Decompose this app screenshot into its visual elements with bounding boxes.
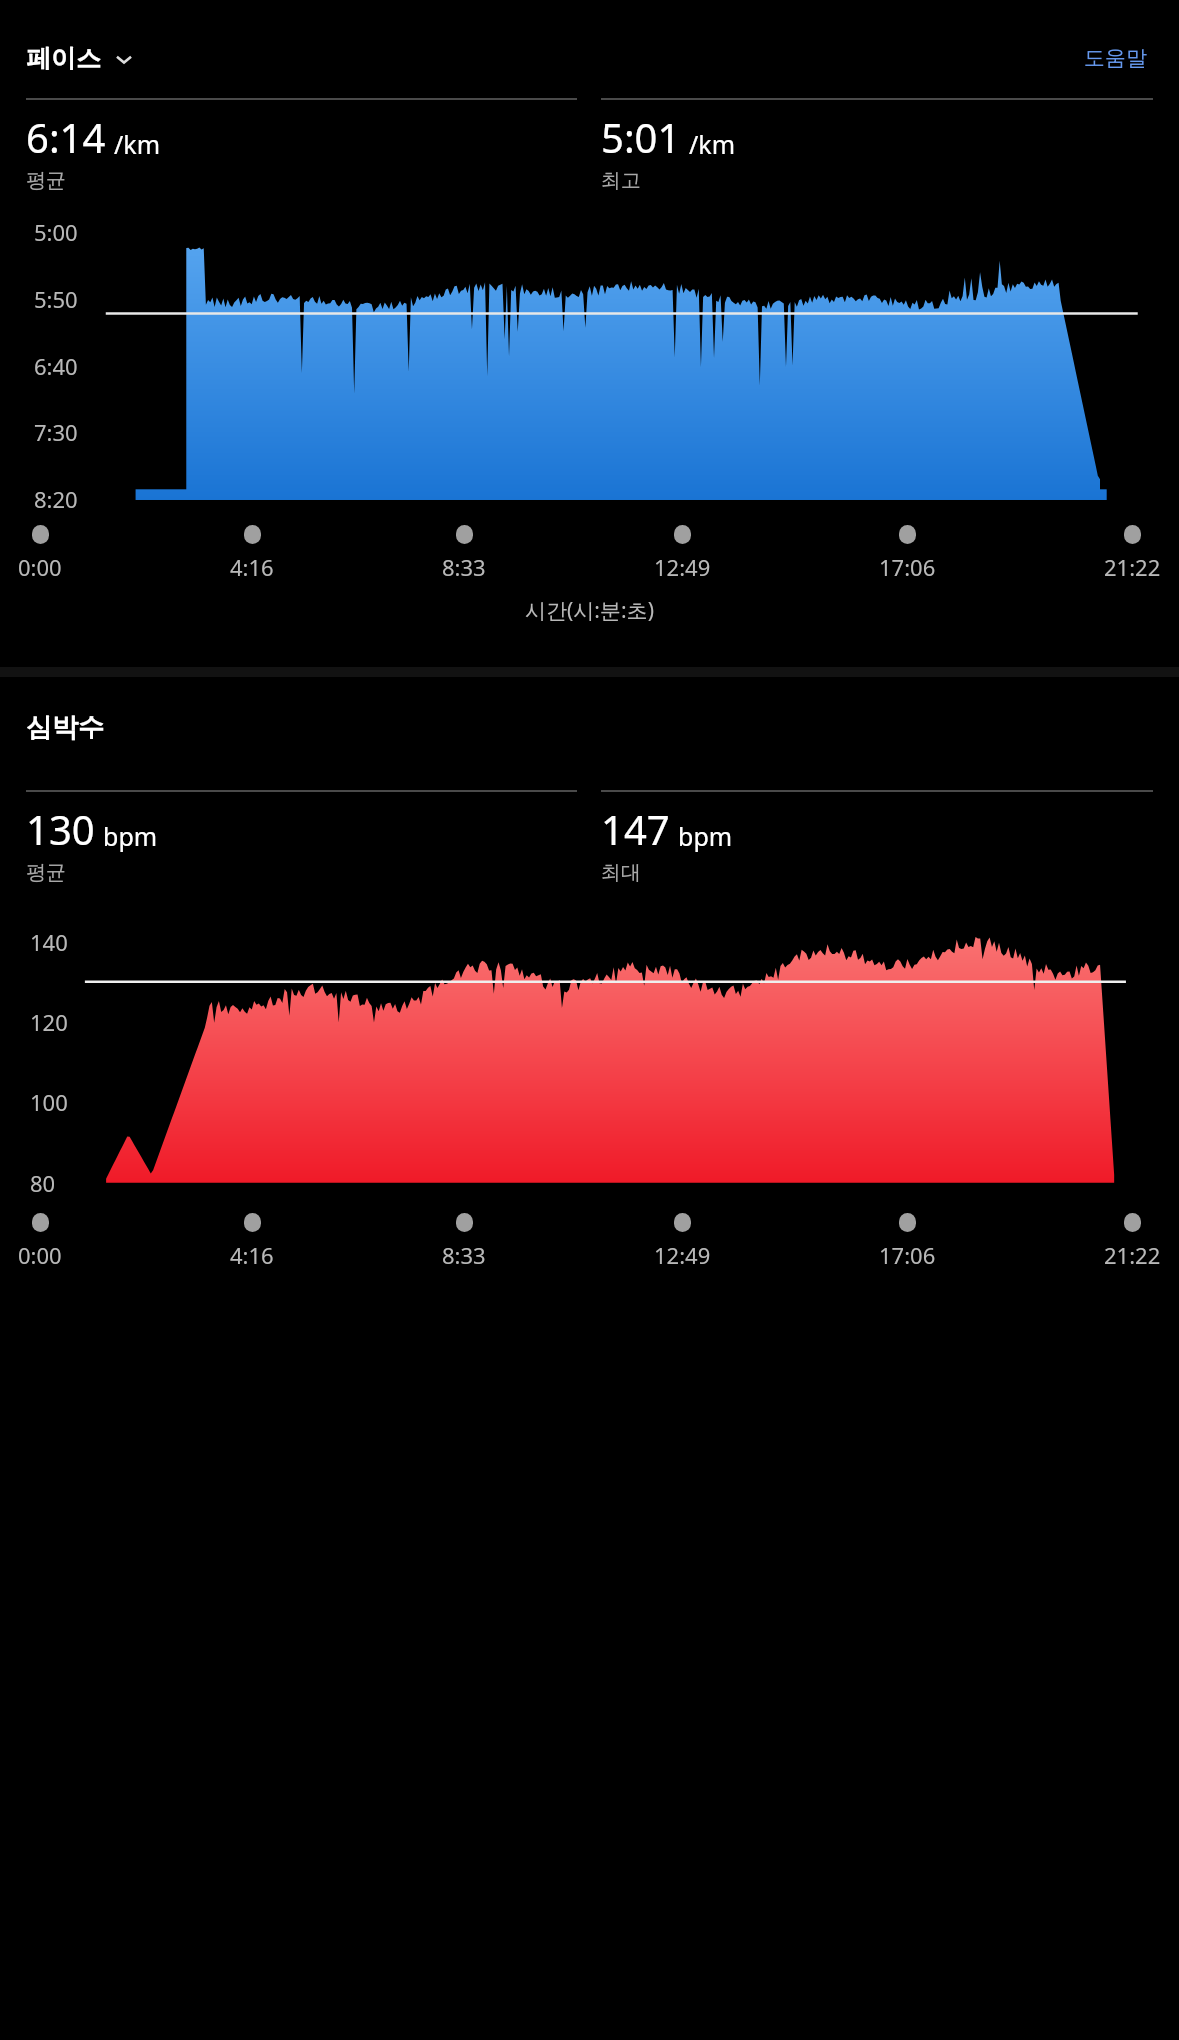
- staticText: 147: [601, 802, 670, 856]
- staticText: 17:06: [879, 1240, 936, 1270]
- staticText: 5:00: [34, 217, 78, 247]
- staticText: 140: [30, 927, 68, 957]
- staticText: bpm: [678, 819, 733, 853]
- staticText: /km: [689, 127, 736, 161]
- staticText: 0:00: [18, 552, 62, 582]
- staticText: 12:49: [654, 552, 711, 582]
- staticText: 6:40: [34, 351, 78, 381]
- staticText: 7:30: [34, 417, 78, 447]
- staticText: 5:01: [601, 110, 681, 164]
- staticText: 80: [30, 1168, 56, 1198]
- staticText: 12:49: [654, 1240, 711, 1270]
- staticText: 평균: [26, 168, 66, 193]
- staticText: 4:16: [230, 1240, 274, 1270]
- staticText: 8:33: [442, 552, 486, 582]
- staticText: 120: [30, 1007, 68, 1037]
- staticText: 5:50: [34, 284, 78, 314]
- staticText: 0:00: [18, 1240, 62, 1270]
- staticText: 21:22: [1104, 1240, 1161, 1270]
- staticText: 시간(시:분:초): [525, 596, 654, 625]
- staticText: 최대: [601, 860, 641, 885]
- staticText: 8:20: [34, 484, 78, 514]
- button[interactable]: 도움말: [1078, 39, 1153, 77]
- staticText: 21:22: [1104, 552, 1161, 582]
- staticText: /km: [114, 127, 161, 161]
- staticText: 최고: [601, 168, 641, 193]
- staticText: bpm: [103, 819, 158, 853]
- staticText: 17:06: [879, 552, 936, 582]
- staticText: 페이스: [26, 43, 101, 74]
- staticText: 6:14: [26, 110, 106, 164]
- staticText: 130: [26, 802, 95, 856]
- staticText: 4:16: [230, 552, 274, 582]
- staticText: 8:33: [442, 1240, 486, 1270]
- button[interactable]: 페이스: [26, 43, 143, 74]
- staticText: 100: [30, 1087, 68, 1117]
- staticText: 심박수: [26, 711, 104, 744]
- staticText: 도움말: [1084, 45, 1147, 71]
- staticText: 평균: [26, 860, 66, 885]
